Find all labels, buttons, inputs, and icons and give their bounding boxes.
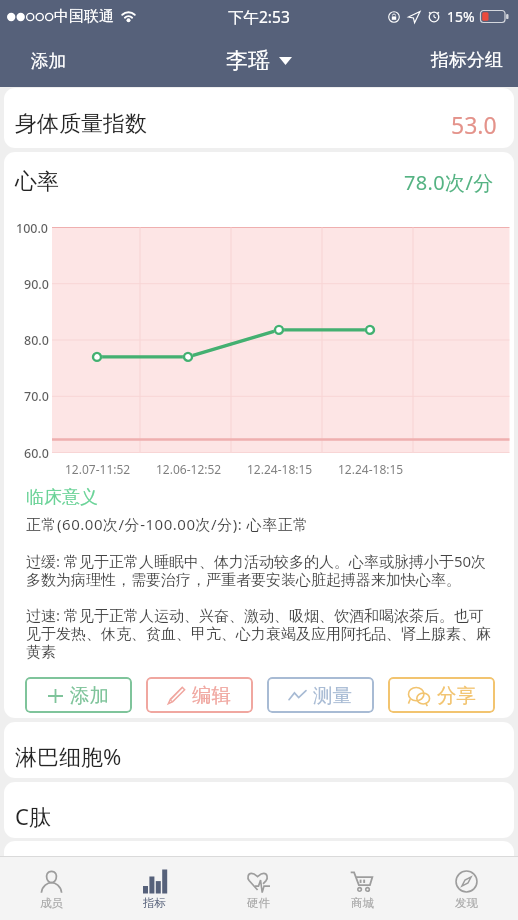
button[interactable]: 身体质量指数: [4, 88, 514, 148]
staticText: 淋巴细胞%: [15, 741, 122, 771]
button[interactable]: 成员: [0, 857, 103, 920]
button[interactable]: 测量: [267, 677, 374, 713]
staticText: 测量: [313, 683, 352, 708]
staticText: 临床意义: [26, 486, 98, 509]
staticText: 添加: [31, 50, 66, 72]
staticText: 100.0: [16, 220, 49, 236]
staticText: 15%: [447, 7, 475, 26]
staticText: 80.0: [24, 332, 49, 348]
button[interactable]: 添加: [0, 37, 90, 85]
staticText: 指标分组: [431, 49, 503, 72]
button[interactable]: 指标分组: [407, 36, 518, 85]
staticText: 血红蛋白: [15, 861, 103, 889]
button[interactable]: 发现: [414, 857, 518, 920]
button[interactable]: 硬件: [206, 857, 310, 920]
staticText: 70.0: [24, 388, 49, 404]
button[interactable]: 添加: [25, 677, 132, 713]
button[interactable]: C肽: [4, 782, 514, 838]
staticText: 下午2:53: [228, 6, 290, 27]
staticText: 成员: [40, 896, 63, 910]
staticText: 12.24-18:15: [247, 461, 313, 477]
staticText: 过缓: 常见于正常人睡眠中、体力活动较多的人。心率或脉搏小于50次多数为病理性，…: [26, 551, 492, 590]
staticText: 李瑶: [226, 47, 270, 75]
staticText: 心率: [15, 168, 59, 196]
staticText: 正常(60.00次/分-100.00次/分): 心率正常: [26, 514, 309, 534]
staticText: 中国联通: [54, 7, 114, 26]
button[interactable]: 分享: [388, 677, 495, 713]
button[interactable]: 血红蛋白: [4, 841, 514, 897]
button[interactable]: 编辑: [146, 677, 253, 713]
staticText: 分享: [437, 683, 476, 708]
staticText: 硬件: [247, 896, 270, 910]
staticText: 12.07-11:52: [65, 461, 131, 477]
staticText: 身体质量指数: [15, 110, 147, 138]
staticText: 12.06-12:52: [156, 461, 222, 477]
staticText: C肽: [15, 801, 51, 831]
staticText: 发现: [455, 896, 478, 910]
staticText: 60.0: [24, 445, 49, 461]
button[interactable]: 商城: [310, 857, 414, 920]
button[interactable]: 心率: [4, 152, 514, 212]
staticText: 90.0: [24, 276, 49, 292]
button[interactable]: 指标: [103, 857, 206, 920]
button[interactable]: 李瑶: [212, 37, 306, 85]
staticText: 商城: [351, 896, 374, 910]
staticText: 指标: [143, 896, 166, 910]
staticText: 53.0: [451, 109, 497, 140]
staticText: 78.0次/分: [404, 169, 494, 196]
staticText: 添加: [70, 683, 109, 708]
staticText: 12.24-18:15: [338, 461, 404, 477]
staticText: 编辑: [192, 683, 231, 708]
staticText: 过速: 常见于正常人运动、兴奋、激动、吸烟、饮酒和喝浓茶后。也可见于发热、休克、…: [26, 605, 492, 662]
button[interactable]: 淋巴细胞%: [4, 722, 514, 778]
